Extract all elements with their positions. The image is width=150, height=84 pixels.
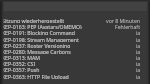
button[interactable]: XEP-0198: Stream Management bbox=[0, 36, 150, 42]
button[interactable]: XEP-0363: HTTP File Upload bbox=[0, 73, 150, 79]
staticText: vor 8 Minuten bbox=[106, 17, 141, 23]
button[interactable]: Sitzung wiederhergestellt bbox=[0, 17, 150, 23]
staticText: XEP-0352: CSI bbox=[2, 60, 36, 66]
staticText: XEP-0191: Blocking Command bbox=[2, 29, 75, 35]
staticText: XEP-0313: MAM bbox=[2, 54, 41, 60]
staticText: ja bbox=[136, 29, 141, 35]
button[interactable]: XEP-0237: Roster Versioning bbox=[0, 42, 150, 48]
staticText: ja bbox=[136, 36, 141, 42]
staticText: XEP-0280: Message Carbons bbox=[2, 48, 71, 54]
staticText: XEP-0163: PEP (Avatars/OMEMO) bbox=[2, 23, 82, 29]
button[interactable]: XEP-0280: Message Carbons bbox=[0, 48, 150, 54]
staticText: ja bbox=[136, 60, 141, 66]
button[interactable]: XEP-0313: MAM bbox=[0, 54, 150, 60]
button[interactable]: XEP-0191: Blocking Command bbox=[0, 29, 150, 35]
staticText: ja bbox=[136, 73, 141, 79]
staticText: ja bbox=[136, 54, 141, 60]
staticText: XEP-0363: HTTP File Upload bbox=[2, 73, 69, 79]
staticText: XEP-0237: Roster Versioning bbox=[2, 42, 71, 48]
button[interactable]: XEP-0163: PEP (Avatars/OMEMO) bbox=[0, 23, 150, 29]
staticText: Sitzung wiederhergestellt bbox=[2, 17, 65, 23]
staticText: ja bbox=[136, 42, 141, 48]
button[interactable]: XEP-0357: Push bbox=[0, 66, 150, 72]
staticText: XEP-0357: Push bbox=[2, 66, 40, 72]
staticText: ja bbox=[136, 48, 141, 54]
button[interactable]: XEP-0352: CSI bbox=[0, 60, 150, 66]
staticText: ja bbox=[136, 66, 141, 72]
staticText: Fehlerhaft bbox=[115, 23, 141, 29]
staticText: XEP-0198: Stream Management bbox=[2, 36, 79, 42]
